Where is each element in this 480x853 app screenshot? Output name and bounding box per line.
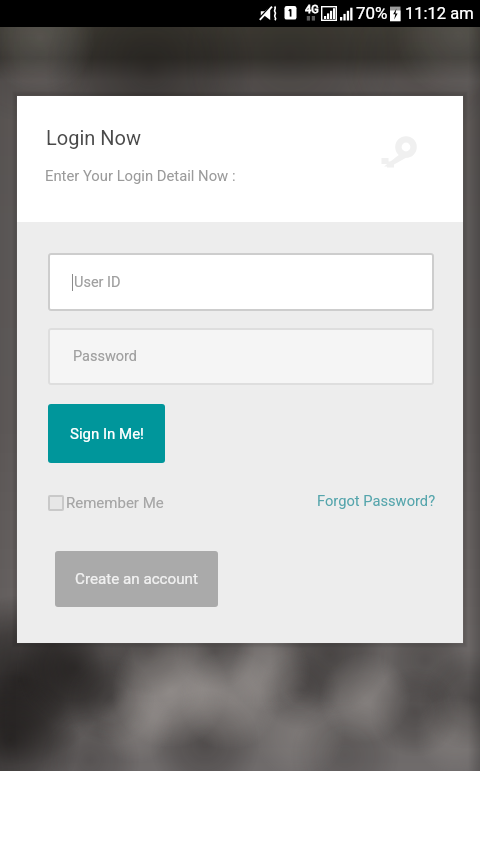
other: Key: [376, 128, 424, 176]
button[interactable]: Remember Me: [48, 494, 164, 512]
staticText: User ID: [74, 274, 121, 291]
staticText: Remember Me: [66, 494, 164, 512]
button[interactable]: Forgot Password?: [317, 492, 436, 509]
button[interactable]: User ID: [48, 253, 434, 311]
staticText: 4G: [305, 3, 319, 16]
button[interactable]: Create an account: [55, 551, 218, 607]
staticText: Sign In Me!: [70, 425, 144, 443]
button[interactable]: Password: [48, 328, 434, 385]
staticText: 70%: [356, 3, 388, 23]
staticText: Password: [73, 348, 138, 365]
staticText: Login Now: [46, 126, 141, 149]
staticText: 11:12 am: [405, 4, 474, 23]
staticText: Create an account: [75, 570, 198, 588]
button[interactable]: Sign In Me!: [48, 404, 165, 463]
staticText: Enter Your Login Detail Now :: [45, 167, 236, 184]
